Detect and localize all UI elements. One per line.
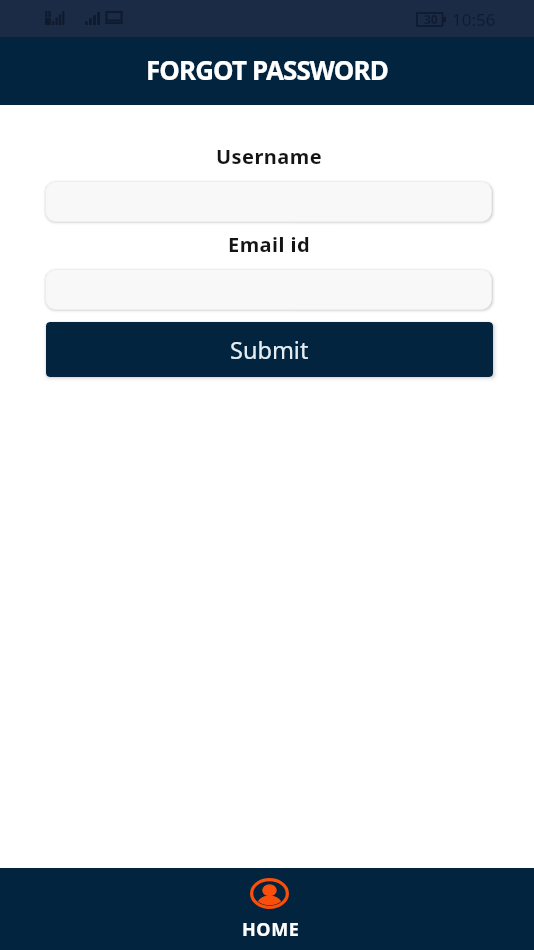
staticText: Email id [2,231,534,258]
button[interactable]: Home [218,868,324,942]
staticText: HOME [242,917,300,942]
staticText: FORGOT PASSWORD [146,52,388,87]
staticText: Submit [230,334,309,366]
other: Cellular signal [85,12,101,25]
staticText: 30 [424,11,438,27]
staticText: Username [2,143,534,170]
other: Battery 30 percent [417,13,446,26]
other: Mobile data signal [45,11,69,25]
staticText: 10:56 [452,8,496,31]
button[interactable]: Submit [46,322,493,377]
other: Home [250,878,289,909]
other: Cast to screen [105,12,123,25]
